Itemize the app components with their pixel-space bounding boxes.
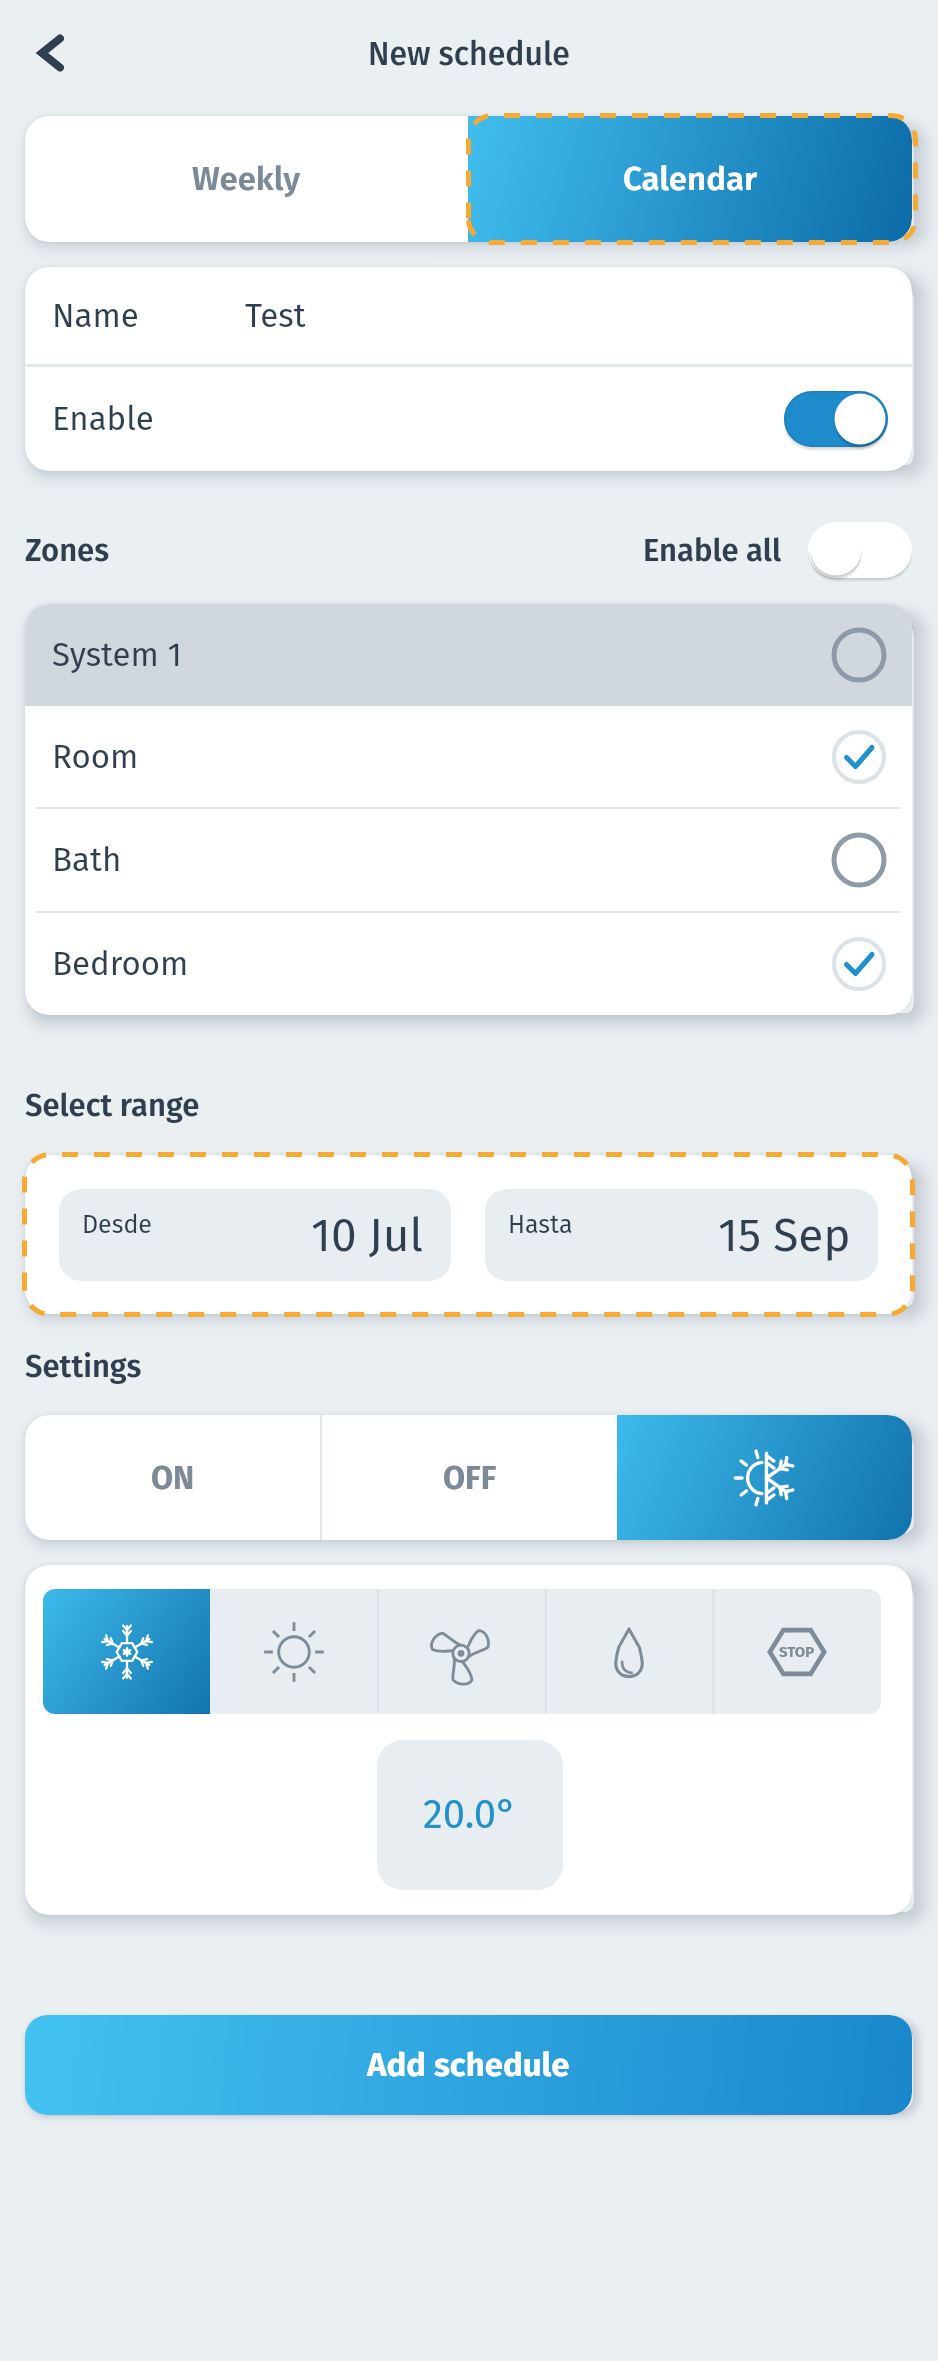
staticText: Bath <box>52 840 122 880</box>
staticText: 20.0° <box>423 1791 517 1839</box>
button[interactable]: Stop mode <box>713 1589 881 1714</box>
staticText: Calendar <box>623 159 758 199</box>
button[interactable]: Cool mode <box>43 1589 210 1714</box>
staticText: ON <box>151 1459 195 1497</box>
staticText: Room <box>52 737 139 777</box>
staticText: Settings <box>25 1348 142 1385</box>
button[interactable]: Desde <box>25 1155 912 1314</box>
staticText: Hasta <box>508 1210 573 1240</box>
button[interactable]: Off <box>808 522 912 578</box>
staticText: OFF <box>443 1459 497 1497</box>
staticText: Name <box>52 296 139 336</box>
button[interactable]: OFF <box>322 1415 617 1540</box>
button[interactable]: Back <box>14 16 88 90</box>
button[interactable]: Bath <box>25 809 912 911</box>
button[interactable]: Fan mode <box>377 1589 545 1714</box>
staticText: Add schedule <box>367 2045 570 2085</box>
button[interactable]: Bedroom <box>25 913 912 1015</box>
button[interactable]: ON <box>25 1415 320 1540</box>
button[interactable]: 20.0° <box>377 1740 563 1890</box>
staticText: Weekly <box>192 159 301 199</box>
staticText: Bedroom <box>52 944 189 984</box>
staticText: Test <box>245 296 306 336</box>
button[interactable]: Desde <box>59 1189 451 1281</box>
staticText: Desde <box>82 1210 152 1240</box>
staticText: Zones <box>25 532 110 569</box>
staticText: STOP <box>779 1643 815 1661</box>
button[interactable]: Calendar <box>468 116 912 242</box>
staticText: System 1 <box>52 635 182 675</box>
button[interactable]: Dry mode <box>545 1589 713 1714</box>
button[interactable]: Heat mode <box>210 1589 377 1714</box>
button[interactable]: Add schedule <box>25 2015 912 2115</box>
button[interactable]: Name <box>25 267 912 364</box>
button[interactable]: On <box>784 391 888 447</box>
staticText: 10 Jul <box>311 1208 424 1263</box>
button[interactable]: Weekly <box>25 116 468 242</box>
staticText: 15 Sep <box>718 1208 851 1263</box>
button[interactable]: Enable <box>25 367 912 471</box>
button[interactable]: Room <box>25 706 912 807</box>
staticText: New schedule <box>368 35 570 73</box>
button[interactable]: System 1 <box>25 604 912 706</box>
staticText: Enable <box>52 399 154 439</box>
button[interactable]: Auto mode <box>617 1415 912 1540</box>
staticText: Enable all <box>643 532 782 569</box>
button[interactable]: Hasta <box>485 1189 878 1281</box>
staticText: Select range <box>25 1087 200 1124</box>
